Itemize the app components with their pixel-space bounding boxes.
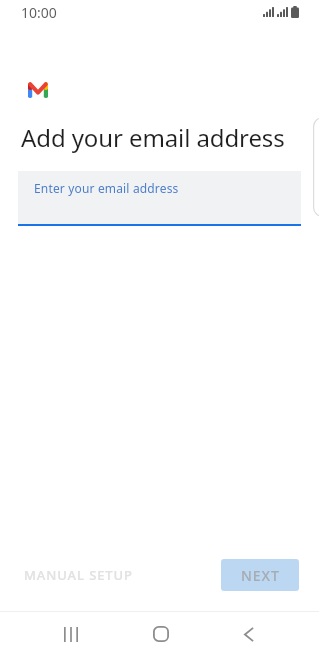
staticText: 10:00 [21, 3, 57, 22]
button[interactable]: Back [205, 612, 293, 656]
staticText: Enter your email address [34, 180, 179, 196]
button[interactable]: NEXT [221, 559, 299, 591]
button[interactable]: Enter your email address [18, 171, 301, 227]
button[interactable]: MANUAL SETUP [20, 560, 137, 590]
staticText: Add your email address [21, 121, 285, 154]
button[interactable]: Home [117, 612, 205, 656]
staticText: MANUAL SETUP [24, 566, 133, 584]
staticText: NEXT [241, 566, 280, 585]
button[interactable]: Recent apps [27, 612, 115, 656]
